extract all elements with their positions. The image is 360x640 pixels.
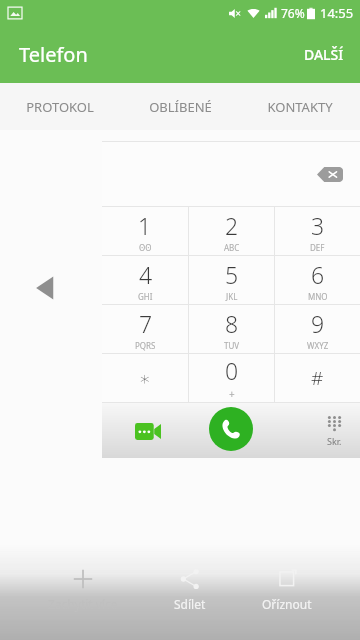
button[interactable]: Sdílet <box>166 566 214 614</box>
staticText: + <box>229 387 235 401</box>
button[interactable]: Zachytit více <box>40 566 126 614</box>
staticText: 2 <box>225 210 239 241</box>
staticText: 7 <box>139 308 153 339</box>
staticText: 8 <box>225 308 239 339</box>
staticText: # <box>311 365 324 391</box>
staticText: Telefon <box>19 41 88 68</box>
staticText: 5 <box>225 259 239 290</box>
staticText: ∗ <box>139 367 151 389</box>
button[interactable]: 7 <box>102 305 188 353</box>
staticText: PROTOKOL <box>26 98 94 116</box>
button[interactable]: 3 <box>275 207 360 255</box>
button[interactable]: 6 <box>275 256 360 304</box>
staticText: ʘʘ <box>139 242 152 253</box>
staticText: MNO <box>308 291 328 302</box>
staticText: 76% <box>281 5 305 21</box>
staticText: 1 <box>138 210 152 241</box>
button[interactable]: Hide keypad <box>327 415 342 447</box>
staticText: 9 <box>311 308 325 339</box>
button[interactable]: # <box>275 354 360 402</box>
button[interactable]: 1 <box>102 207 188 255</box>
button[interactable]: 5 <box>189 256 274 304</box>
staticText: 0 <box>225 355 239 386</box>
button[interactable]: KONTAKTY <box>240 83 360 130</box>
button[interactable]: 2 <box>189 207 274 255</box>
button[interactable]: Backspace <box>312 161 348 187</box>
staticText: PQRS <box>135 340 156 351</box>
staticText: DALŠÍ <box>304 45 344 64</box>
staticText: JKL <box>226 291 238 302</box>
staticText: Sdílet <box>174 596 206 612</box>
staticText: Oříznout <box>262 596 312 612</box>
staticText: GHI <box>138 291 153 302</box>
button[interactable]: PROTOKOL <box>0 83 120 130</box>
staticText: KONTAKTY <box>267 98 333 116</box>
button[interactable]: DALŠÍ <box>288 35 360 74</box>
staticText: 3 <box>311 210 325 241</box>
staticText: OBLÍBENÉ <box>149 98 212 116</box>
button[interactable]: Back <box>33 273 59 303</box>
staticText: 4 <box>139 259 153 290</box>
staticText: WXYZ <box>307 340 329 351</box>
button[interactable]: 8 <box>189 305 274 353</box>
staticText: 6 <box>311 259 325 290</box>
button[interactable]: 0 <box>189 354 274 402</box>
button[interactable]: OBLÍBENÉ <box>120 83 240 130</box>
button[interactable]: Video call <box>130 413 166 449</box>
staticText: Skr. <box>327 435 342 447</box>
staticText: TUV <box>224 340 240 351</box>
button[interactable]: Oříznout <box>254 566 320 614</box>
button[interactable]: 9 <box>275 305 360 353</box>
staticText: DEF <box>310 242 325 253</box>
staticText: ABC <box>224 242 240 253</box>
button[interactable]: Call <box>209 407 253 451</box>
button[interactable]: ∗ <box>102 354 188 402</box>
staticText: 14:55 <box>320 4 354 22</box>
button[interactable]: 4 <box>102 256 188 304</box>
